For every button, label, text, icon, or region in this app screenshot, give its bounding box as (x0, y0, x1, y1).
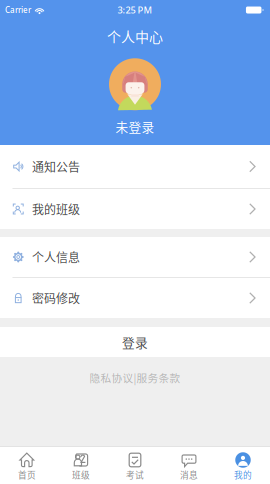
button[interactable]: 隐私协议|服务条款 (89, 357, 180, 389)
button[interactable]: 我的 (216, 447, 270, 484)
staticText: 通知公告 (32, 158, 80, 175)
button[interactable]: 我的班级 (0, 189, 270, 229)
staticText: 我的 (234, 468, 252, 481)
staticText: 个人中心 (107, 26, 163, 46)
button[interactable]: 班级 (54, 447, 108, 484)
button[interactable]: 通知公告 (0, 145, 270, 188)
staticText: 消息 (180, 468, 198, 481)
staticText: 登录 (122, 333, 148, 351)
staticText: 个人信息 (32, 248, 80, 266)
staticText: 未登录 (115, 117, 154, 136)
staticText: 班级 (72, 468, 90, 481)
button[interactable]: 登录 (0, 327, 270, 357)
staticText: 隐私协议|服务条款 (89, 370, 180, 385)
button[interactable]: 首页 (0, 447, 54, 484)
staticText: Carrier (5, 5, 31, 15)
button[interactable]: 密码修改 (0, 278, 270, 318)
staticText: 3:25 PM (117, 4, 152, 16)
button[interactable]: 消息 (162, 447, 216, 484)
staticText: 我的班级 (32, 200, 80, 218)
staticText: 密码修改 (32, 289, 80, 307)
button[interactable]: 个人信息 (0, 237, 270, 277)
staticText: 首页 (18, 468, 36, 481)
button[interactable]: 考试 (108, 447, 162, 484)
staticText: 考试 (126, 468, 144, 481)
